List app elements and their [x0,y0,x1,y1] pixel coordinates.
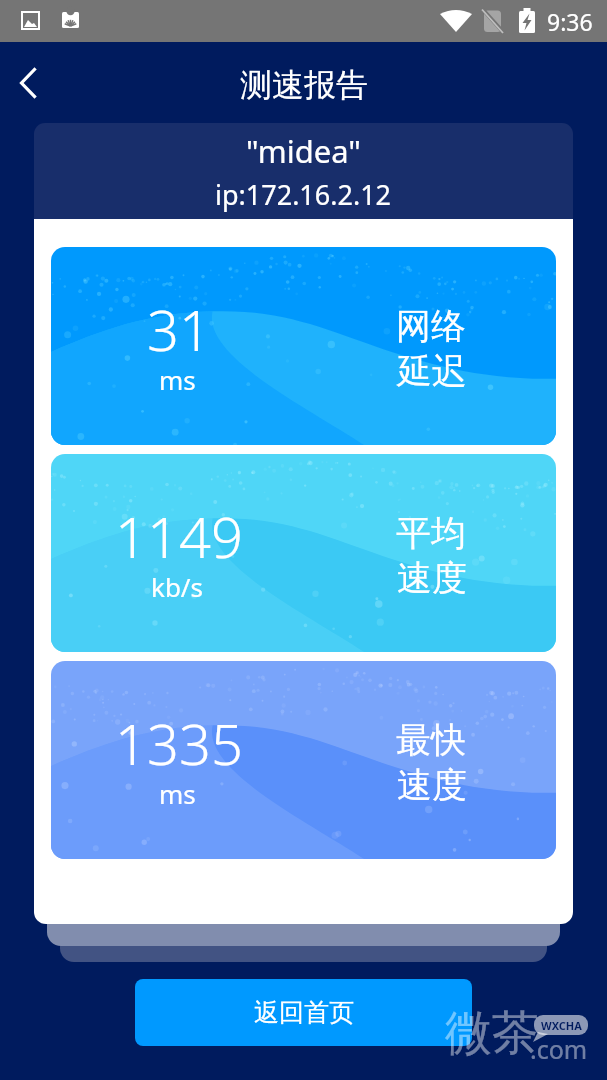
button[interactable]: Back [0,55,56,111]
staticText: 测速报告 [240,65,368,105]
button[interactable]: 31 [51,247,556,445]
staticText: WXCHA [541,1018,582,1033]
staticText: 速度 [397,556,467,600]
staticText: 返回首页 [254,997,354,1028]
staticText: 1149 [115,498,243,574]
button[interactable]: 1149 [51,454,556,652]
staticText: ip:172.16.2.12 [215,176,392,213]
staticText: ms [159,776,196,811]
staticText: 延迟 [397,349,467,393]
staticText: 1335 [115,705,243,781]
staticText: 微茶 [445,1004,539,1063]
staticText: 9:36 [547,6,593,37]
staticText: "midea" [246,130,361,172]
staticText: 平均 [396,511,466,555]
staticText: kb/s [151,569,204,604]
staticText: 最快 [396,718,466,762]
staticText: 网络 [396,304,466,348]
staticText: 速度 [397,763,467,807]
staticText: .com [530,1032,588,1066]
button[interactable]: 1335 [51,661,556,859]
staticText: ms [159,362,196,397]
staticText: 31 [147,291,211,367]
button[interactable]: 返回首页 [135,979,472,1046]
